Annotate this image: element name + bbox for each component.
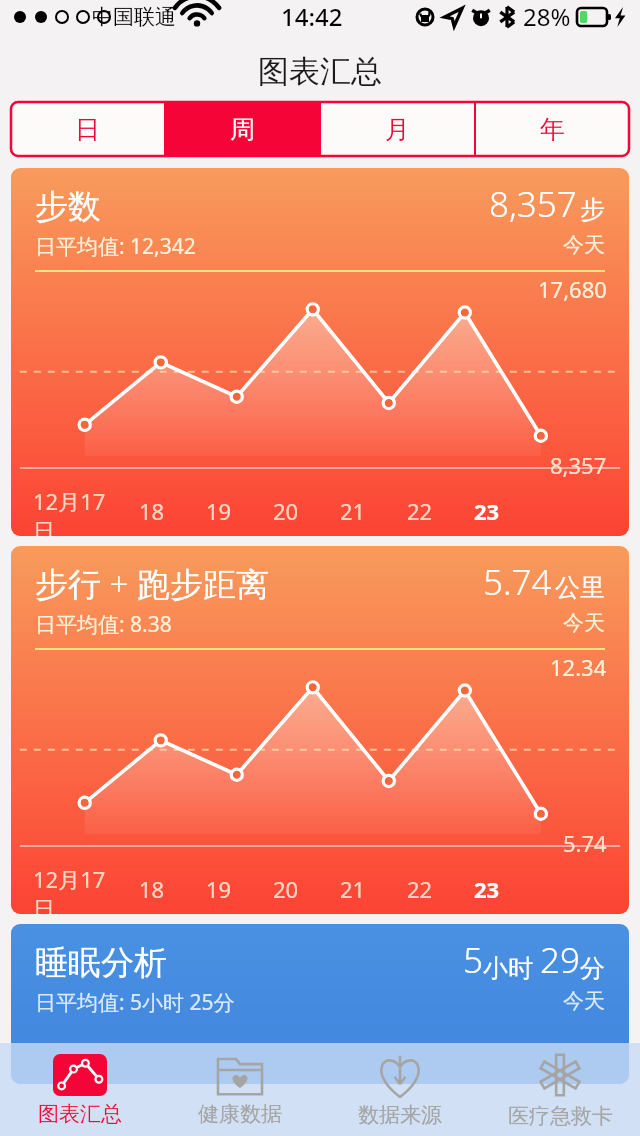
staticText: 21 [340,496,366,526]
staticText: 日平均值: 12,342 [35,232,196,261]
staticText: 数据来源 [358,1102,442,1128]
staticText: 日平均值: 8.38 [35,610,172,639]
staticText: 23 [474,874,500,904]
staticText: 19 [206,496,232,526]
staticText: 28% [523,0,571,33]
staticText: 19 [206,874,232,904]
button[interactable]: 步行 + 跑步距离 [11,546,629,914]
button[interactable]: 睡眠分析 [11,924,629,1084]
staticText: 5.74 [483,558,552,606]
staticText: 医疗急救卡 [508,1103,613,1129]
staticText: 17,680 [538,274,607,304]
button[interactable]: 步数 [11,168,629,536]
staticText: 图表汇总 [38,1101,122,1127]
staticText: 分 [580,953,605,984]
staticText: 5 [463,936,483,984]
button[interactable]: 月 [321,102,474,156]
staticText: 周 [230,114,255,145]
staticText: 18 [139,496,165,526]
staticText: 5.74 [563,828,607,858]
staticText: 12.34 [550,652,607,682]
staticText: 步 [580,194,605,225]
staticText: 日 [75,114,100,145]
button[interactable]: 年 [476,102,629,156]
button[interactable]: 数据来源 [320,1043,480,1136]
staticText: 健康数据 [198,1101,282,1127]
staticText: 公里 [555,572,605,603]
staticText: 8,357 [489,180,577,228]
staticText: 20 [273,874,299,904]
button[interactable]: 医疗急救卡 [480,1043,640,1136]
staticText: 今天 [563,232,605,258]
staticText: 今天 [563,988,605,1014]
staticText: 29 [540,936,580,984]
staticText: 8,357 [550,450,607,480]
staticText: 12月17日 [33,864,118,914]
staticText: 步行 + 跑步距离 [35,561,270,606]
staticText: 睡眠分析 [35,942,167,984]
staticText: 图表汇总 [258,52,382,91]
staticText: 14:42 [281,0,343,33]
staticText: 月 [385,114,410,145]
staticText: 12月17日 [33,486,118,536]
button[interactable]: 图表汇总 [0,1043,160,1136]
staticText: 20 [273,496,299,526]
staticText: 中国联通 [92,4,176,30]
staticText: 21 [340,874,366,904]
button[interactable]: 周 [166,102,319,156]
staticText: 23 [474,496,500,526]
staticText: 22 [407,496,433,526]
staticText: 年 [540,114,565,145]
staticText: 18 [139,874,165,904]
button[interactable]: 日 [11,102,164,156]
staticText: 日平均值: 5小时 25分 [35,988,235,1017]
button[interactable]: 健康数据 [160,1043,320,1136]
staticText: 22 [407,874,433,904]
staticText: 今天 [563,610,605,636]
staticText: 步数 [35,186,101,228]
staticText: 小时 [483,950,540,984]
